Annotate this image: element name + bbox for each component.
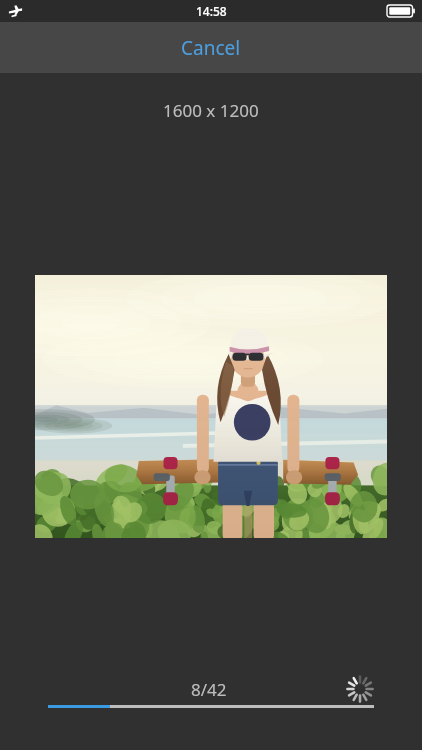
button[interactable]: Loading bbox=[345, 674, 375, 704]
staticText: 1600 x 1200 bbox=[163, 99, 259, 122]
staticText: 14:58 bbox=[196, 3, 227, 19]
staticText: 8/42 bbox=[191, 678, 227, 701]
button[interactable]: Cancel bbox=[161, 26, 261, 70]
button[interactable]: Photo preview bbox=[35, 275, 387, 538]
staticText: Cancel bbox=[181, 35, 241, 61]
